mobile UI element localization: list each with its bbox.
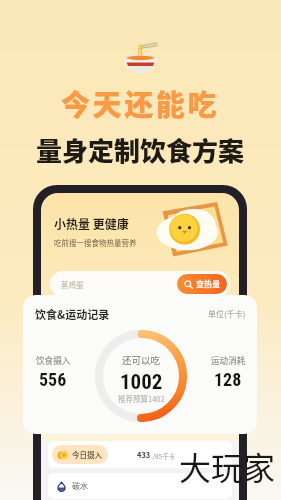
button[interactable]: 碳水 <box>48 473 232 499</box>
staticText: 1002 <box>120 370 163 395</box>
staticText: 单位(千卡) <box>208 308 246 320</box>
staticText: 碳水 <box>72 480 88 492</box>
staticText: 小热量 更健康 <box>54 215 129 232</box>
staticText: 饮食摄入 <box>36 354 71 366</box>
staticText: 运动消耗 <box>211 354 246 366</box>
button[interactable]: 今日摄入 <box>48 441 232 468</box>
staticText: 量身定制饮食方案 <box>36 131 245 169</box>
staticText: 还可以吃 <box>122 353 161 367</box>
staticText: 556 <box>39 369 67 390</box>
staticText: 吃前搜一搜食物热量营养 <box>54 237 137 248</box>
staticText: 128 <box>214 369 242 390</box>
staticText: 今日摄入 <box>72 449 102 460</box>
staticText: /85千卡 <box>151 451 176 460</box>
staticText: 大玩家 <box>179 443 276 489</box>
staticText: 推荐预算1402 <box>118 393 165 404</box>
button[interactable]: 蒸鸡蛋 <box>50 271 230 297</box>
staticText: 查热量 <box>196 278 220 290</box>
button[interactable]: 查热量 <box>177 274 227 294</box>
staticText: 433 <box>137 449 151 460</box>
staticText: 蒸鸡蛋 <box>61 279 177 290</box>
staticText: 今天还能吃 <box>61 82 220 124</box>
staticText: 饮食&运动记录 <box>35 306 110 322</box>
